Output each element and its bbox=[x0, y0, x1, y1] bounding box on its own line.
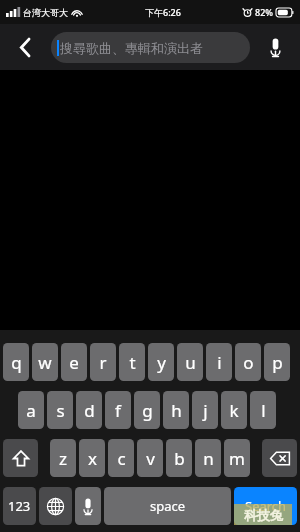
button[interactable]: s bbox=[47, 391, 73, 429]
staticText: q bbox=[11, 351, 22, 374]
button[interactable]: f bbox=[105, 391, 131, 429]
button[interactable]: q bbox=[3, 343, 29, 381]
staticText: space bbox=[150, 497, 186, 515]
button[interactable]: Shift bbox=[3, 439, 38, 477]
staticText: z bbox=[59, 447, 67, 470]
staticText: 台湾大哥大 bbox=[23, 7, 68, 18]
staticText: s bbox=[56, 399, 65, 422]
button[interactable]: j bbox=[192, 391, 218, 429]
button[interactable]: p bbox=[264, 343, 290, 381]
button[interactable]: z bbox=[50, 439, 76, 477]
button[interactable]: o bbox=[235, 343, 261, 381]
staticText: l bbox=[261, 399, 266, 422]
staticText: y bbox=[157, 351, 166, 374]
button[interactable]: i bbox=[206, 343, 232, 381]
staticText: 下午6:26 bbox=[145, 6, 181, 18]
staticText: b bbox=[174, 447, 185, 470]
button[interactable]: c bbox=[108, 439, 134, 477]
staticText: u bbox=[185, 351, 196, 374]
staticText: 搜尋歌曲、專輯和演出者 bbox=[60, 40, 203, 56]
button[interactable]: Backspace bbox=[262, 439, 297, 477]
button[interactable]: Back bbox=[0, 24, 51, 70]
button[interactable]: Change keyboard language bbox=[39, 487, 72, 525]
button[interactable]: space bbox=[104, 487, 231, 525]
button[interactable]: Dictate bbox=[75, 487, 101, 525]
staticText: 123 bbox=[8, 497, 31, 515]
button[interactable]: 搜尋歌曲、專輯和演出者 bbox=[51, 32, 250, 63]
staticText: Search bbox=[245, 497, 287, 515]
staticText: n bbox=[203, 447, 214, 470]
button[interactable]: b bbox=[166, 439, 192, 477]
button[interactable]: w bbox=[32, 343, 58, 381]
button[interactable]: t bbox=[119, 343, 145, 381]
staticText: 82% bbox=[255, 6, 273, 18]
button[interactable]: m bbox=[224, 439, 250, 477]
button[interactable]: l bbox=[250, 391, 276, 429]
button[interactable]: g bbox=[134, 391, 160, 429]
staticText: o bbox=[243, 351, 254, 374]
button[interactable]: 123 bbox=[3, 487, 36, 525]
staticText: p bbox=[272, 351, 283, 374]
staticText: d bbox=[84, 399, 95, 422]
button[interactable]: n bbox=[195, 439, 221, 477]
staticText: j bbox=[203, 399, 208, 422]
staticText: h bbox=[171, 399, 182, 422]
button[interactable]: Voice search bbox=[250, 24, 300, 70]
staticText: f bbox=[115, 399, 121, 422]
button[interactable]: e bbox=[61, 343, 87, 381]
staticText: c bbox=[117, 447, 126, 470]
staticText: x bbox=[88, 447, 97, 470]
button[interactable]: y bbox=[148, 343, 174, 381]
staticText: r bbox=[99, 351, 107, 374]
staticText: a bbox=[26, 399, 36, 422]
staticText: k bbox=[229, 399, 239, 422]
staticText: t bbox=[129, 351, 136, 374]
button[interactable]: h bbox=[163, 391, 189, 429]
button[interactable]: r bbox=[90, 343, 116, 381]
staticText: g bbox=[142, 399, 153, 422]
staticText: v bbox=[146, 447, 155, 470]
staticText: i bbox=[217, 351, 222, 374]
staticText: e bbox=[69, 351, 79, 374]
staticText: 科技兔 bbox=[244, 507, 283, 523]
button[interactable]: a bbox=[18, 391, 44, 429]
button[interactable]: Search bbox=[234, 487, 297, 525]
staticText: w bbox=[38, 351, 52, 374]
staticText: m bbox=[229, 447, 245, 470]
button[interactable]: x bbox=[79, 439, 105, 477]
button[interactable]: v bbox=[137, 439, 163, 477]
button[interactable]: k bbox=[221, 391, 247, 429]
button[interactable]: d bbox=[76, 391, 102, 429]
button[interactable]: u bbox=[177, 343, 203, 381]
